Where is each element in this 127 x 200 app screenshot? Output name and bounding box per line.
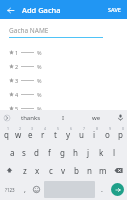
button[interactable]: n (83, 161, 96, 179)
staticText: c (49, 165, 53, 176)
button[interactable]: Gacha NAME (9, 26, 118, 38)
button[interactable]: 5 (9, 101, 118, 115)
staticText: % (37, 77, 42, 84)
button[interactable]: 9 (101, 125, 114, 143)
button[interactable]: l (108, 143, 121, 161)
button[interactable]: 1 (9, 45, 118, 59)
staticText: 1 (7, 126, 10, 131)
button[interactable]: b (70, 161, 83, 179)
button[interactable]: 1 (0, 125, 12, 143)
staticText: v (61, 165, 66, 176)
staticText: t (54, 129, 57, 140)
staticText: thanks (21, 114, 41, 122)
staticText: w (15, 129, 22, 140)
staticText: 5 (15, 105, 19, 112)
staticText: m (99, 165, 107, 176)
button[interactable]: 7 (75, 125, 88, 143)
button[interactable]: 8 (88, 125, 101, 143)
staticText: k (99, 147, 104, 158)
staticText: 3 (31, 126, 34, 131)
staticText: Gacha NAME (9, 26, 49, 35)
staticText: s (22, 147, 26, 158)
button[interactable]: Emoji (30, 181, 43, 198)
staticText: p (118, 129, 123, 140)
button[interactable]: 4 (9, 87, 118, 101)
staticText: q (4, 129, 9, 140)
staticText: Add Gacha (22, 5, 61, 15)
button[interactable]: More suggestions (0, 110, 14, 125)
button[interactable]: . (96, 181, 107, 198)
staticText: 0 (122, 126, 125, 131)
staticText: SAVE (108, 6, 121, 13)
staticText: e (28, 129, 33, 140)
button[interactable]: z (18, 161, 31, 179)
staticText: we (92, 114, 101, 122)
staticText: % (37, 91, 42, 98)
button[interactable]: f (43, 143, 56, 161)
staticText: 8 (96, 126, 99, 131)
staticText: 1 (15, 49, 19, 56)
staticText: 9 (109, 126, 112, 131)
staticText: y (66, 129, 71, 140)
button[interactable]: g (56, 143, 69, 161)
button[interactable]: Backspace (109, 161, 127, 179)
staticText: % (37, 63, 42, 70)
button[interactable]: we (80, 110, 113, 125)
staticText: o (105, 129, 110, 140)
button[interactable]: SAVE (104, 3, 125, 16)
button[interactable]: v (57, 161, 70, 179)
staticText: 4 (44, 126, 47, 131)
staticText: x (35, 165, 40, 176)
staticText: b (74, 165, 79, 176)
button[interactable]: x (31, 161, 44, 179)
staticText: , (24, 185, 26, 195)
button[interactable]: d (30, 143, 43, 161)
staticText: r (41, 129, 45, 140)
button[interactable]: h (69, 143, 82, 161)
button[interactable]: a (6, 143, 18, 161)
staticText: 6 (70, 126, 73, 131)
button[interactable]: s (18, 143, 30, 161)
button[interactable]: j (82, 143, 95, 161)
staticText: a (10, 147, 15, 158)
button[interactable]: ?123 (0, 181, 19, 198)
button[interactable]: 6 (62, 125, 75, 143)
staticText: 7 (83, 126, 86, 131)
button[interactable]: 5 (49, 125, 62, 143)
staticText: . (101, 185, 103, 195)
button[interactable]: I (47, 110, 80, 125)
button[interactable]: c (44, 161, 57, 179)
button[interactable]: 2 (12, 125, 24, 143)
staticText: I (62, 114, 65, 122)
staticText: 4 (15, 91, 19, 98)
button[interactable]: thanks (14, 110, 47, 125)
button[interactable]: m (96, 161, 109, 179)
staticText: g (60, 147, 65, 158)
button[interactable]: 4 (36, 125, 49, 143)
button[interactable]: 3 (24, 125, 36, 143)
button[interactable]: Back (3, 3, 17, 17)
staticText: f (48, 147, 51, 158)
staticText: ?123 (5, 187, 15, 193)
button[interactable]: Voice input (113, 110, 127, 125)
button[interactable]: 2 (9, 59, 118, 73)
staticText: n (87, 165, 92, 176)
button[interactable]: Shift (0, 161, 18, 179)
button[interactable]: , (19, 181, 30, 198)
staticText: 3 (15, 77, 19, 84)
staticText: 2 (15, 63, 19, 70)
staticText: d (34, 147, 39, 158)
staticText: h (73, 147, 78, 158)
staticText: % (37, 105, 42, 112)
staticText: % (37, 49, 42, 56)
staticText: u (79, 129, 84, 140)
button[interactable]: Enter (111, 183, 124, 196)
staticText: z (23, 165, 27, 176)
button[interactable]: 3 (9, 73, 118, 87)
staticText: l (113, 147, 116, 158)
staticText: 5 (57, 126, 60, 131)
button[interactable]: 0 (114, 125, 127, 143)
button[interactable]: k (95, 143, 108, 161)
staticText: 2 (19, 126, 22, 131)
